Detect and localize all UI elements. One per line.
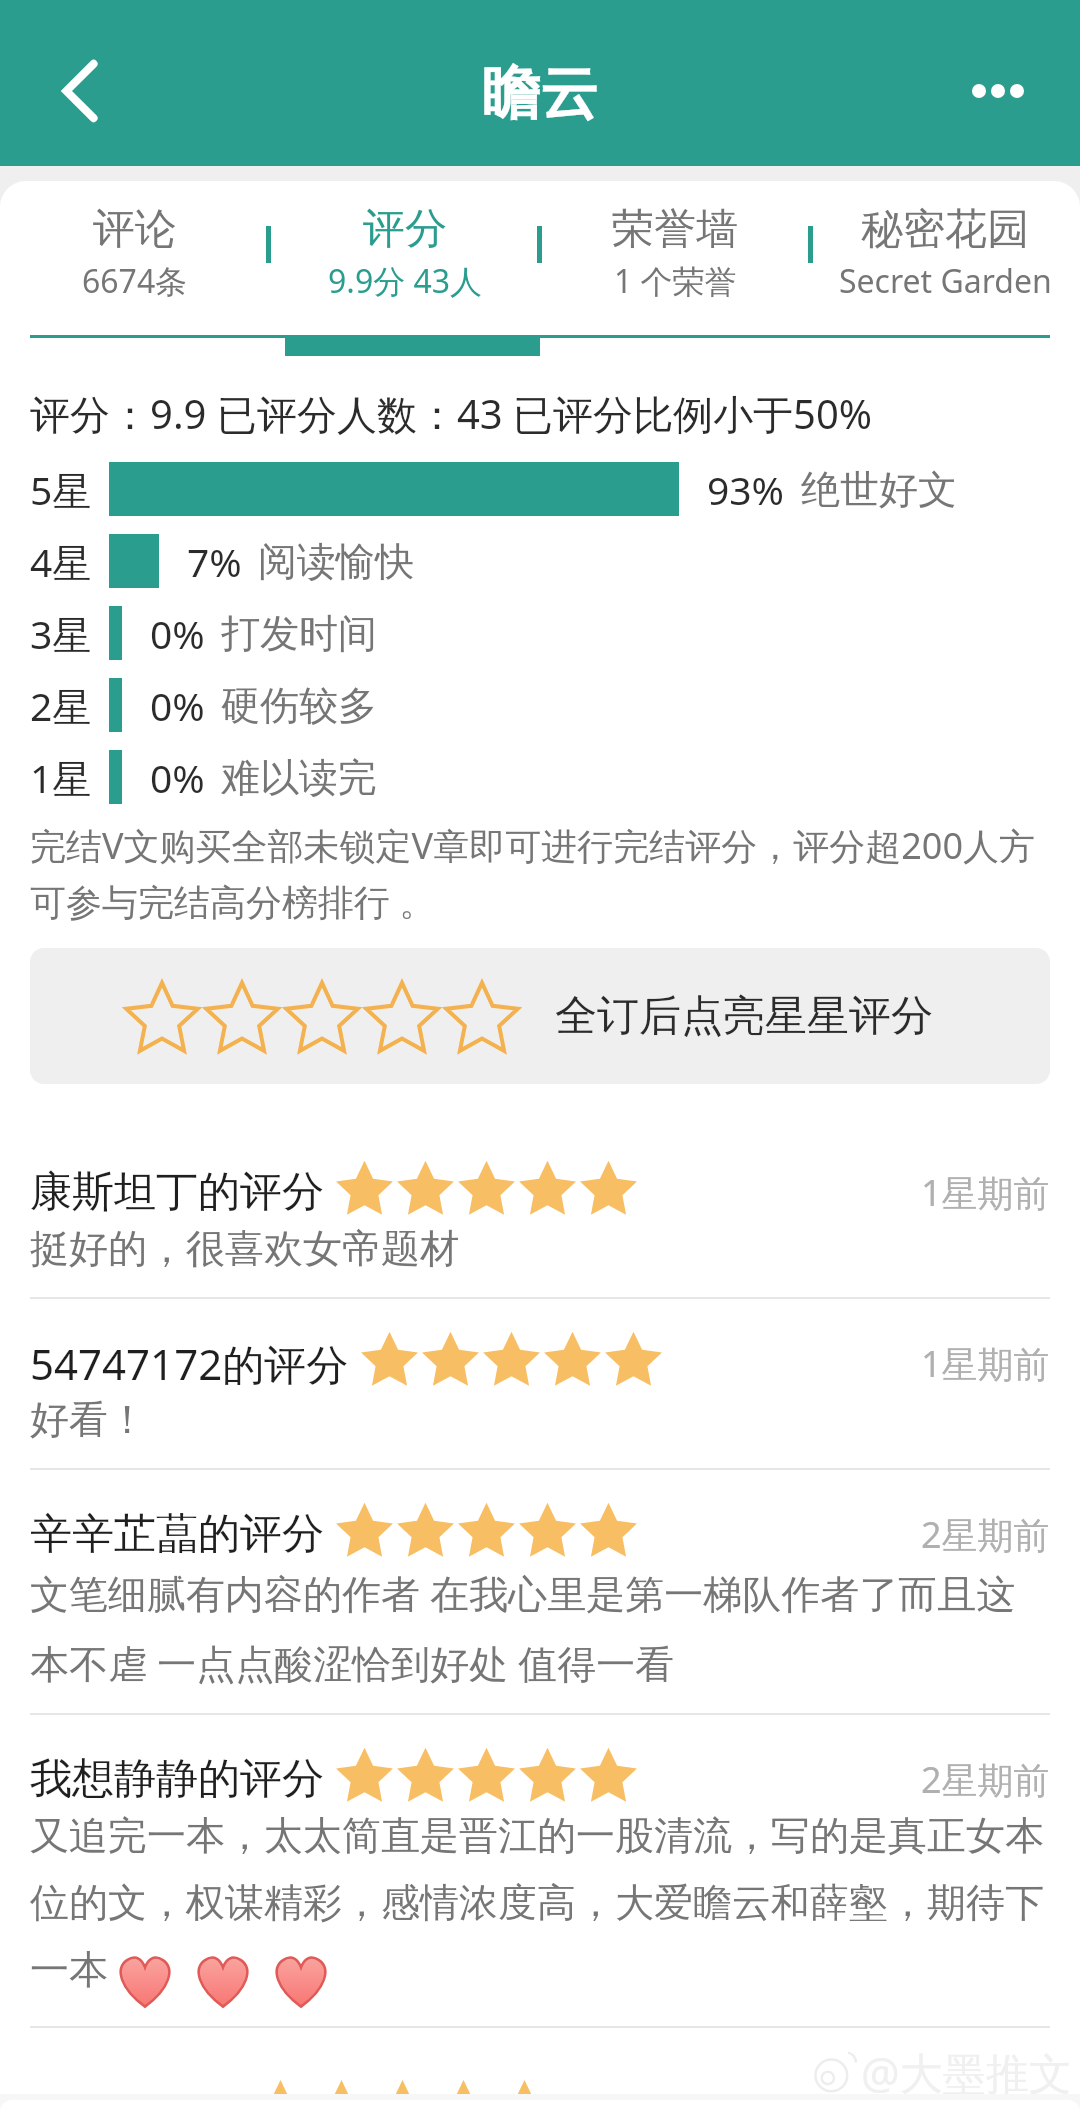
staticText: 又追完一本，太太简直是晋江的一股清流，写的是真正女本 位的文，权谋精彩，感情浓度… [30, 1811, 1044, 1928]
staticText: 评分：9.9 已评分人数：43 已评分比例小于50% [30, 386, 873, 441]
staticText: 54747172的评分 [30, 1335, 349, 1392]
button[interactable]: Back [22, 28, 132, 138]
staticText: 5星 [30, 463, 92, 516]
button[interactable]: 秘密花园 [810, 181, 1080, 303]
staticText: 9.9分 43人 [328, 259, 483, 303]
staticText: 4星 [30, 535, 92, 588]
staticText: 打发时间 [221, 609, 377, 658]
staticText: 0% [150, 751, 205, 804]
staticText: 文笔细腻有内容的作者 在我心里是第一梯队作者了而且这 本不虐 一点点酸涩恰到好处… [30, 1566, 1016, 1689]
staticText: 挺好的，很喜欢女帝题材 [30, 1224, 459, 1273]
staticText: 难以读完 [221, 753, 377, 802]
staticText: 评论 [93, 203, 177, 256]
staticText: 评分 [363, 203, 447, 256]
button[interactable]: 评论 [0, 181, 270, 303]
button[interactable]: More options [948, 28, 1058, 138]
staticText: 全订后点亮星星评分 [555, 990, 933, 1043]
staticText: 0% [150, 607, 205, 660]
staticText: 辛辛芷蕌的评分 [30, 1508, 324, 1561]
staticText: 2星 [30, 679, 92, 732]
staticText: 秘密花园 [861, 203, 1029, 256]
button[interactable]: 荣誉墙 [540, 181, 810, 303]
staticText: @大墨推文 [861, 2043, 1072, 2102]
staticText: 0% [150, 679, 205, 732]
staticText: 康斯坦丁的评分 [30, 1166, 324, 1219]
staticText: 完结V文购买全部未锁定V章即可进行完结评分，评分超200人方 可参与完结高分榜排… [30, 821, 1035, 926]
button[interactable]: 辛辛芷蕌的评分 [0, 1492, 1080, 1737]
staticText: 荣誉墙 [612, 203, 738, 256]
staticText: 2星期前 [921, 1755, 1050, 1804]
staticText: 一本 [30, 1945, 108, 1994]
staticText: 7% [187, 535, 242, 588]
staticText: 3星 [30, 607, 92, 660]
staticText: 瞻云 [482, 57, 598, 130]
staticText: 1星期前 [921, 1168, 1050, 1217]
staticText: 1星期前 [921, 1339, 1050, 1388]
staticText: 2星期前 [921, 1510, 1050, 1559]
button[interactable]: 我想静静的评分 [0, 1737, 1080, 2050]
button[interactable]: 评分 [270, 181, 540, 303]
staticText: Secret Garden [839, 259, 1052, 303]
staticText: 好看！ [30, 1395, 147, 1444]
staticText: 1 个荣誉 [614, 259, 737, 303]
button[interactable]: 康斯坦丁的评分 [0, 1150, 1080, 1321]
button[interactable]: 54747172的评分 [0, 1321, 1080, 1492]
button[interactable]: 阿棠的评分 [0, 2050, 1080, 2112]
button[interactable]: 全订后点亮星星评分 [30, 948, 1050, 1084]
staticText: 1星 [30, 751, 92, 804]
staticText: 我想静静的评分 [30, 1753, 324, 1806]
staticText: 硬伤较多 [221, 681, 377, 730]
staticText: 阅读愉快 [258, 537, 414, 586]
staticText: 绝世好文 [801, 465, 957, 514]
staticText: 93% [707, 463, 785, 516]
staticText: 6674条 [82, 259, 188, 303]
